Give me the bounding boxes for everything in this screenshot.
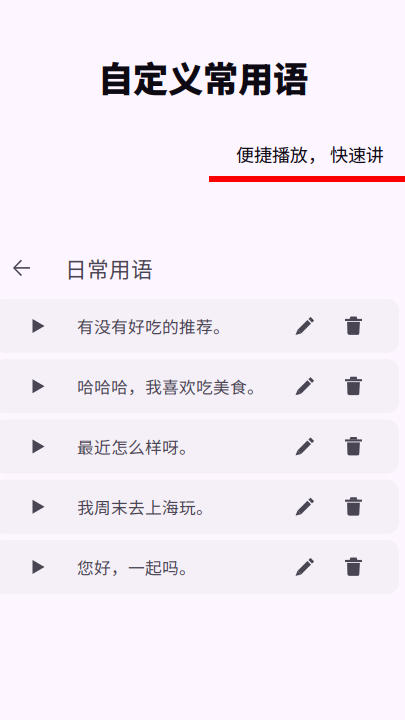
staticText: 您好，一起吗。: [77, 555, 196, 579]
staticText: 有没有好吃的推荐。: [77, 314, 230, 338]
button[interactable]: 删除: [331, 419, 375, 473]
button[interactable]: 编辑: [283, 299, 327, 353]
staticText: 我周末去上海玩。: [77, 495, 213, 519]
staticText: 便捷播放， 快速讲: [236, 141, 384, 167]
button[interactable]: 删除: [331, 480, 375, 534]
button[interactable]: 我周末去上海玩。: [0, 480, 399, 534]
button[interactable]: 有没有好吃的推荐。: [0, 299, 399, 353]
staticText: 哈哈哈，我喜欢吃美食。: [77, 374, 264, 398]
button[interactable]: 播放: [16, 540, 60, 594]
button[interactable]: 编辑: [283, 359, 327, 413]
button[interactable]: 播放: [16, 299, 60, 353]
button[interactable]: 删除: [331, 299, 375, 353]
button[interactable]: 日常用语: [13, 250, 273, 286]
button[interactable]: 您好，一起吗。: [0, 540, 399, 594]
button[interactable]: 删除: [331, 540, 375, 594]
button[interactable]: 播放: [16, 419, 60, 473]
staticText: 日常用语: [65, 252, 153, 284]
staticText: 最近怎么样呀。: [77, 434, 196, 458]
staticText: 自定义常用语: [98, 51, 308, 102]
button[interactable]: 播放: [16, 359, 60, 413]
button[interactable]: 删除: [331, 359, 375, 413]
button[interactable]: 编辑: [283, 540, 327, 594]
button[interactable]: 编辑: [283, 480, 327, 534]
button[interactable]: 编辑: [283, 419, 327, 473]
button[interactable]: 播放: [16, 480, 60, 534]
button[interactable]: 哈哈哈，我喜欢吃美食。: [0, 359, 399, 413]
button[interactable]: 最近怎么样呀。: [0, 419, 399, 473]
